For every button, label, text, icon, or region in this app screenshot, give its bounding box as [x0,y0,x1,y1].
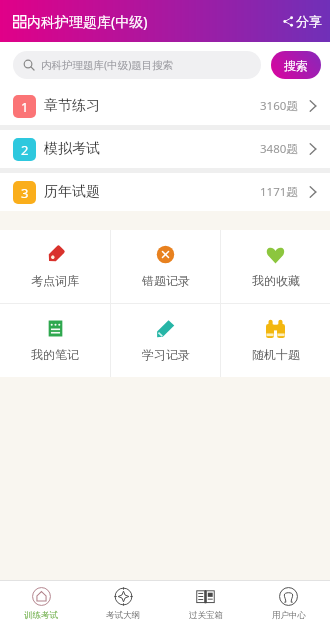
staticText: 模拟考试 [44,140,100,158]
button[interactable]: 内科护理题库(中级)题目搜索 [13,51,261,79]
staticText: 3 [21,184,29,202]
staticText: 我的笔记 [31,347,79,362]
button[interactable]: 用户中心 [247,581,330,627]
staticText: 学习记录 [142,347,190,362]
staticText: 1 [21,98,29,116]
button[interactable]: 3 [0,173,330,211]
button[interactable]: 错题记录 [111,230,220,303]
staticText: 分享 [296,13,322,29]
staticText: 考点词库 [31,273,79,288]
staticText: 3160题 [260,98,298,114]
button[interactable]: 学习记录 [111,304,220,377]
staticText: 1171题 [260,184,298,200]
staticText: 历年试题 [44,183,100,201]
button[interactable]: 2 [0,130,330,168]
button[interactable]: 我的笔记 [0,304,110,377]
staticText: 错题记录 [142,273,190,288]
staticText: 内科护理题库(中级) [27,12,148,31]
button[interactable]: 搜索 [271,51,321,79]
button[interactable]: 分享 [281,9,324,33]
button[interactable]: 随机十题 [221,304,330,377]
staticText: 章节练习 [44,97,100,115]
staticText: 用户中心 [272,610,306,621]
button[interactable]: 考试大纲 [82,581,164,627]
staticText: 过关宝箱 [189,610,223,621]
button[interactable]: 1 [0,87,330,125]
button[interactable]: 我的收藏 [221,230,330,303]
button[interactable]: 考点词库 [0,230,110,303]
staticText: 我的收藏 [252,273,300,288]
staticText: 考试大纲 [106,610,140,621]
staticText: 2 [21,141,29,159]
staticText: 随机十题 [252,347,300,362]
button[interactable]: 训练考试 [0,581,82,627]
staticText: 搜索 [284,58,308,73]
staticText: 3480题 [260,141,298,157]
staticText: 内科护理题库(中级)题目搜索 [41,58,174,72]
staticText: 训练考试 [24,610,58,621]
button[interactable]: 过关宝箱 [164,581,247,627]
